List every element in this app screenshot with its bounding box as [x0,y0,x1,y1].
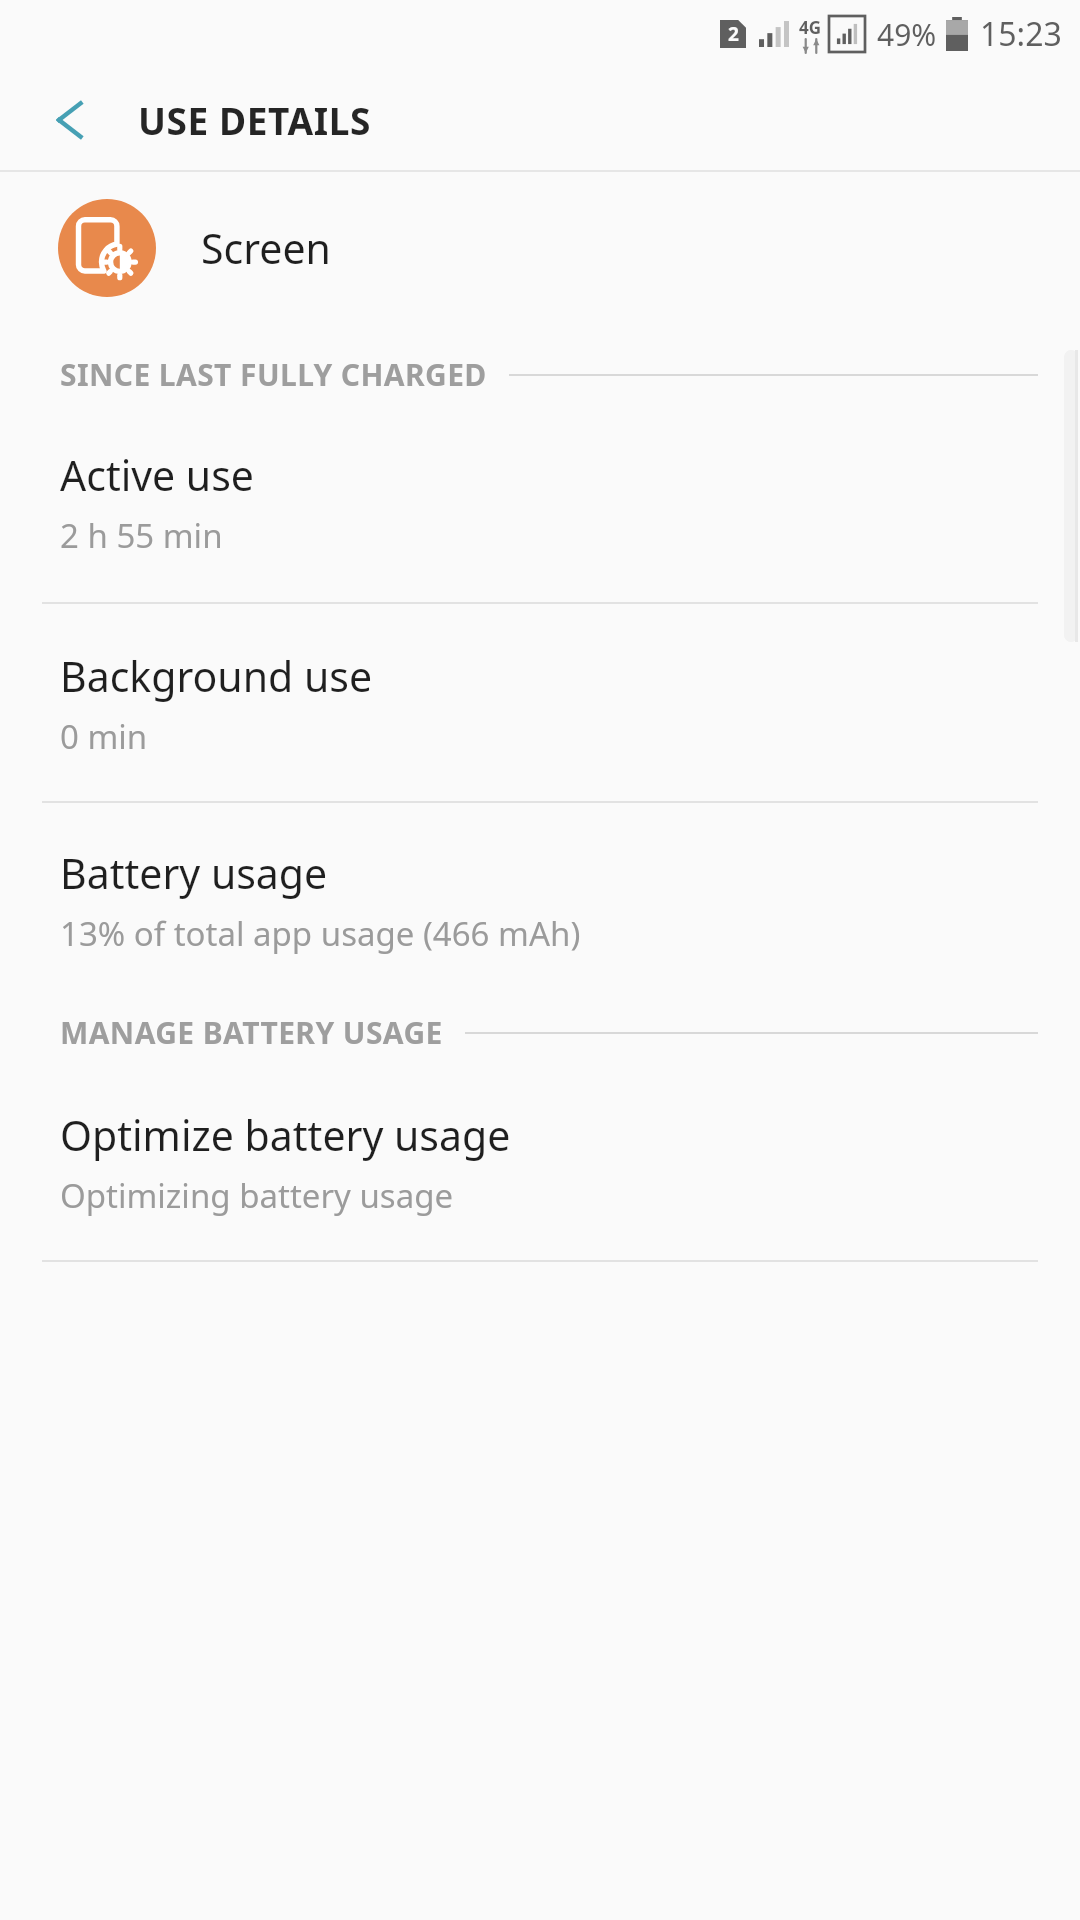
button[interactable]: Back [34,83,108,157]
button[interactable]: Active use [0,447,1080,558]
staticText: 2 h 55 min [60,513,223,558]
staticText: 13% of total app usage (466 mAh) [60,911,581,956]
button[interactable]: Background use [0,648,1080,759]
staticText: Optimize battery usage [60,1107,511,1163]
staticText: Battery usage [60,845,328,901]
button[interactable]: Battery usage [0,845,1080,956]
staticText: Optimizing battery usage [60,1173,454,1218]
staticText: USE DETAILS [138,95,371,145]
staticText: 0 min [60,714,148,759]
staticText: MANAGE BATTERY USAGE [60,1012,443,1053]
staticText: Screen [201,220,331,276]
staticText: 49% [877,14,937,55]
staticText: 2 [728,21,739,47]
staticText: Active use [60,447,254,503]
button[interactable]: Optimize battery usage [0,1107,1080,1218]
staticText: 4G [799,16,822,39]
staticText: SINCE LAST FULLY CHARGED [60,354,487,395]
staticText: Background use [60,648,373,704]
button[interactable]: Screen [0,172,1080,324]
staticText: 15:23 [980,12,1062,56]
